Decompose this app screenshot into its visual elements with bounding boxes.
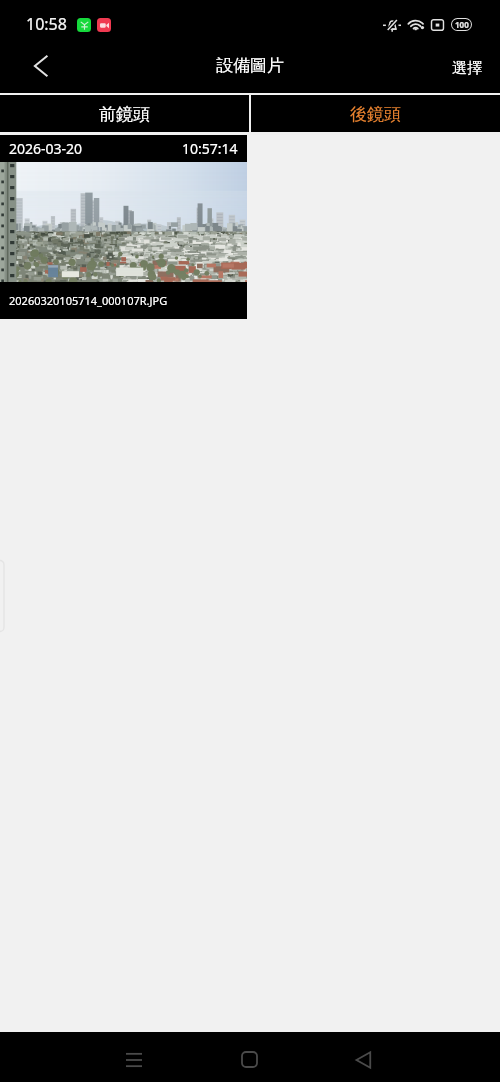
button[interactable]: Recent apps [110,1036,157,1082]
staticText: 前鏡頭 [99,104,150,125]
staticText: 10:58 [26,13,67,35]
button[interactable]: 前鏡頭 [0,95,249,132]
button[interactable]: 選擇 [442,45,500,93]
staticText: 選擇 [452,59,482,78]
button[interactable]: 2026-03-20 [0,135,247,319]
staticText: 10:57:14 [182,139,238,158]
staticText: 設備圖片 [216,55,284,76]
staticText: 2026-03-20 [9,139,83,158]
staticText: 20260320105714_000107R.JPG [9,293,168,308]
button[interactable]: 後鏡頭 [251,95,500,132]
button[interactable]: Home [226,1036,273,1082]
staticText: 後鏡頭 [350,104,401,125]
button[interactable]: Back [340,1036,387,1082]
staticText: 100 [455,19,469,30]
button[interactable]: Back [18,42,64,90]
